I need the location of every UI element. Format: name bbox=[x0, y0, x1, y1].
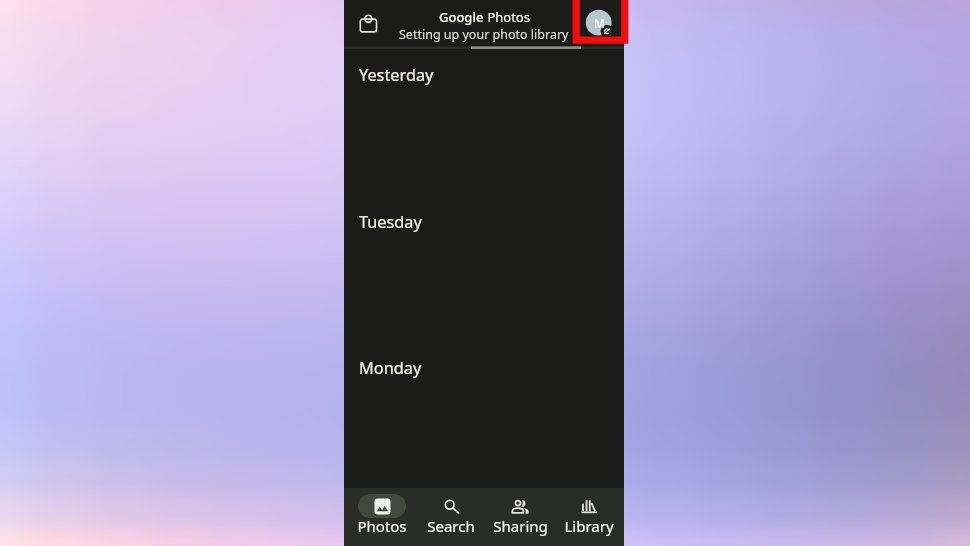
staticText: Photos bbox=[357, 516, 407, 536]
button[interactable]: Library bbox=[554, 488, 624, 546]
staticText: Library bbox=[564, 516, 614, 536]
staticText: Google bbox=[439, 8, 484, 26]
button[interactable]: Search bbox=[416, 488, 486, 546]
staticText: Sharing bbox=[493, 516, 548, 536]
staticText: Photos bbox=[484, 8, 530, 26]
button[interactable]: Sharing bbox=[485, 488, 555, 546]
staticText: Setting up your photo library bbox=[399, 26, 569, 43]
staticText: M bbox=[594, 15, 605, 31]
staticText: Search bbox=[427, 516, 475, 536]
staticText: Tuesday bbox=[359, 211, 422, 233]
staticText: Monday bbox=[359, 357, 422, 379]
button[interactable]: Photos bbox=[347, 488, 417, 546]
button[interactable]: Account bbox=[582, 4, 619, 41]
staticText: Yesterday bbox=[359, 64, 434, 86]
button[interactable]: Store bbox=[351, 6, 387, 42]
